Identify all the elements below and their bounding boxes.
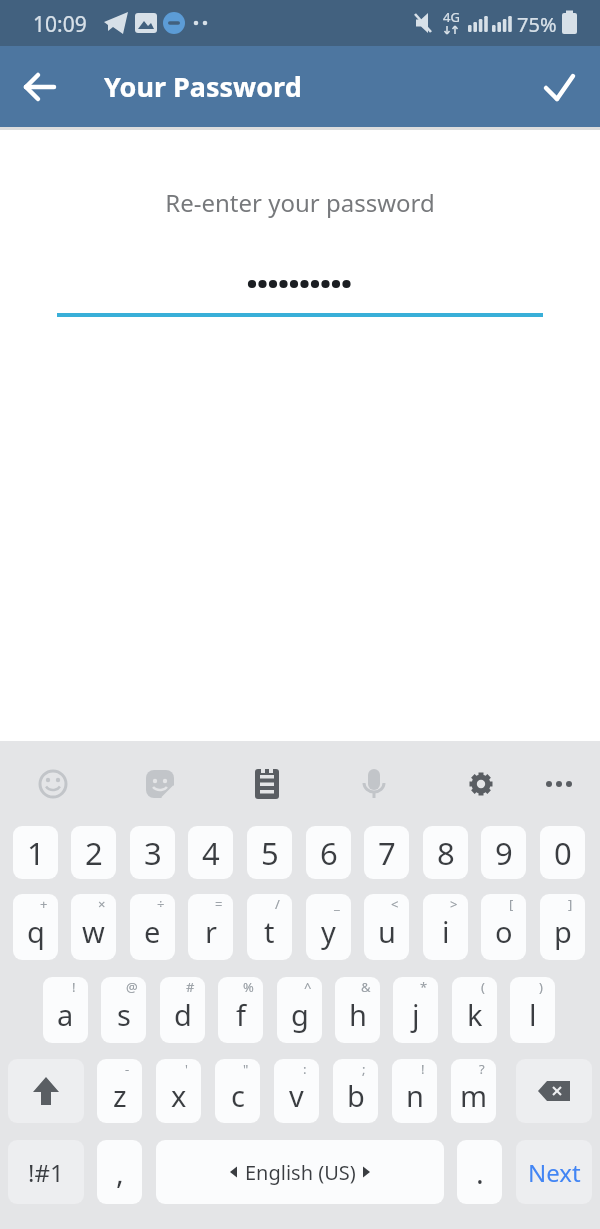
button[interactable]: ]: [540, 894, 585, 960]
staticText: y: [321, 912, 336, 951]
staticText: 4G: [443, 8, 460, 26]
staticText: ,: [116, 1153, 124, 1192]
button[interactable]: ^: [277, 977, 322, 1043]
button[interactable]: @: [101, 977, 146, 1043]
staticText: ]: [568, 895, 573, 913]
button[interactable]: ;: [333, 1059, 378, 1123]
staticText: &: [361, 978, 371, 996]
staticText: f: [236, 995, 246, 1034]
staticText: Next: [528, 1156, 581, 1189]
button[interactable]: 8: [423, 826, 468, 879]
staticText: c: [231, 1076, 245, 1115]
button[interactable]: [: [481, 894, 526, 960]
staticText: ): [539, 978, 543, 996]
button[interactable]: >: [423, 894, 468, 960]
staticText: 5: [261, 832, 279, 874]
staticText: 6: [320, 832, 338, 874]
button[interactable]: 2: [71, 826, 116, 879]
button[interactable]: 6: [306, 826, 351, 879]
staticText: -: [125, 1060, 130, 1078]
staticText: 9: [495, 832, 513, 874]
button[interactable]: (: [452, 977, 497, 1043]
button[interactable]: 9: [481, 826, 526, 879]
button[interactable]: [8, 1059, 84, 1123]
button[interactable]: ?: [451, 1059, 496, 1123]
staticText: [: [509, 895, 514, 913]
button[interactable]: ): [510, 977, 555, 1043]
staticText: g: [291, 995, 309, 1034]
staticText: ': [185, 1060, 188, 1078]
staticText: m: [460, 1076, 488, 1115]
staticText: i: [442, 912, 450, 951]
staticText: Re-enter your password: [0, 186, 600, 219]
staticText: ": [243, 1060, 249, 1078]
staticText: j: [412, 995, 420, 1034]
staticText: v: [289, 1076, 304, 1115]
staticText: 75%: [517, 11, 557, 38]
button[interactable]: +: [13, 894, 58, 960]
staticText: h: [349, 995, 367, 1034]
staticText: ^: [304, 978, 312, 996]
button[interactable]: *: [393, 977, 438, 1043]
staticText: !: [72, 978, 76, 996]
staticText: ×: [98, 895, 106, 913]
staticText: %: [243, 978, 254, 996]
button[interactable]: ,: [97, 1140, 142, 1204]
staticText: Your Password: [104, 68, 302, 105]
staticText: :: [303, 1060, 307, 1078]
staticText: ;: [362, 1060, 366, 1078]
button[interactable]: 1: [13, 826, 58, 879]
staticText: +: [40, 895, 48, 913]
staticText: !: [421, 1060, 425, 1078]
staticText: 8: [437, 832, 455, 874]
button[interactable]: =: [188, 894, 233, 960]
button[interactable]: :: [274, 1059, 319, 1123]
button[interactable]: 0: [540, 826, 585, 879]
button[interactable]: ": [215, 1059, 260, 1123]
button[interactable]: -: [97, 1059, 142, 1123]
button[interactable]: !#1: [8, 1140, 84, 1204]
button[interactable]: %: [218, 977, 263, 1043]
staticText: =: [215, 895, 223, 913]
staticText: ?: [479, 1060, 485, 1078]
button[interactable]: /: [247, 894, 292, 960]
button[interactable]: .: [457, 1140, 502, 1204]
button[interactable]: 3: [130, 826, 175, 879]
button[interactable]: 5: [247, 826, 292, 879]
button[interactable]: English (US): [156, 1140, 444, 1204]
staticText: q: [27, 912, 45, 951]
staticText: *: [420, 978, 428, 996]
button[interactable]: ÷: [130, 894, 175, 960]
staticText: 2: [85, 832, 103, 874]
staticText: #: [186, 978, 195, 996]
staticText: 10:09: [33, 10, 87, 39]
button[interactable]: &: [335, 977, 380, 1043]
staticText: l: [529, 995, 537, 1034]
staticText: !#1: [28, 1156, 64, 1189]
button[interactable]: _: [306, 894, 351, 960]
staticText: d: [174, 995, 192, 1034]
button[interactable]: [516, 1059, 592, 1123]
staticText: r: [205, 912, 217, 951]
button[interactable]: !: [392, 1059, 437, 1123]
button[interactable]: [14, 61, 66, 113]
staticText: x: [171, 1076, 187, 1115]
staticText: English (US): [245, 1159, 356, 1186]
button[interactable]: 4: [188, 826, 233, 879]
staticText: @: [126, 978, 138, 996]
button[interactable]: #: [160, 977, 205, 1043]
button[interactable]: !: [43, 977, 88, 1043]
button[interactable]: ×: [71, 894, 116, 960]
button[interactable]: ': [156, 1059, 201, 1123]
button[interactable]: [533, 61, 585, 113]
staticText: s: [117, 995, 131, 1034]
staticText: .: [476, 1153, 484, 1192]
staticText: e: [144, 912, 161, 951]
button[interactable]: Next: [516, 1140, 592, 1204]
staticText: k: [467, 995, 483, 1034]
staticText: 0: [554, 832, 572, 874]
button[interactable]: 7: [364, 826, 409, 879]
staticText: /: [275, 895, 280, 913]
button[interactable]: <: [364, 894, 409, 960]
